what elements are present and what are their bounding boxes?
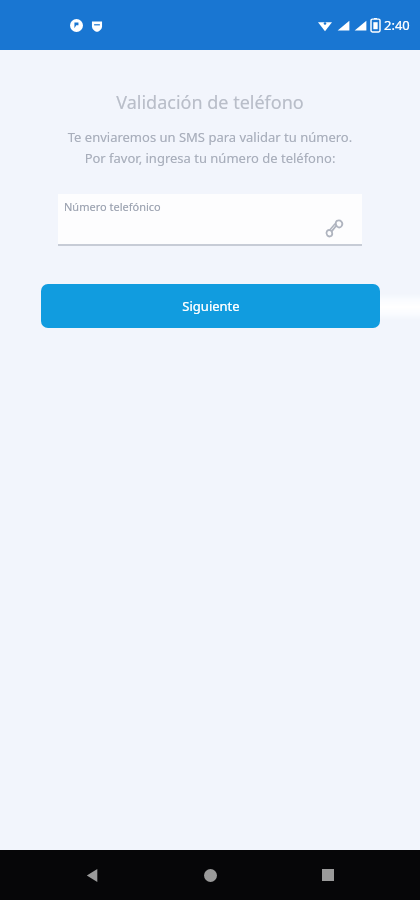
button[interactable]: Recent apps xyxy=(308,855,348,895)
staticText: Número telefónico xyxy=(64,199,161,214)
staticText: Validación de teléfono xyxy=(0,90,420,115)
staticText: Siguiente xyxy=(182,297,240,315)
button[interactable]: Back xyxy=(72,855,112,895)
button[interactable]: Número telefónico xyxy=(58,194,362,246)
button[interactable]: Siguiente xyxy=(41,284,380,328)
other: Phone xyxy=(325,219,344,238)
staticText: Te enviaremos un SMS para validar tu núm… xyxy=(0,128,420,146)
button[interactable]: Home xyxy=(190,855,230,895)
staticText: 2:40 xyxy=(384,16,410,34)
staticText: Por favor, ingresa tu número de teléfono… xyxy=(0,149,420,167)
